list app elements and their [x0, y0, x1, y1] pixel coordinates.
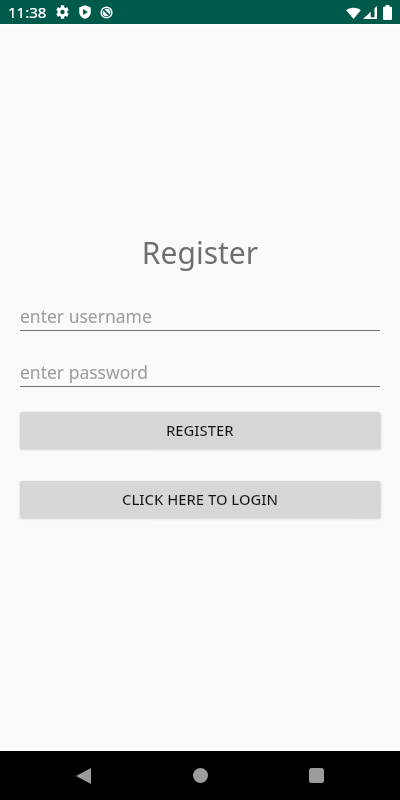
staticText: enter username	[20, 304, 152, 328]
staticText: 11:38	[8, 2, 47, 22]
button[interactable]: Home	[176, 751, 225, 800]
staticText: Register	[20, 232, 380, 273]
button[interactable]: Back	[59, 751, 108, 800]
staticText: CLICK HERE TO LOGIN	[122, 489, 279, 509]
staticText: REGISTER	[166, 420, 234, 440]
staticText: enter password	[20, 360, 148, 384]
button[interactable]: enter password	[20, 360, 380, 387]
button[interactable]: Recent apps	[292, 751, 341, 800]
button[interactable]: REGISTER	[20, 412, 380, 449]
button[interactable]: CLICK HERE TO LOGIN	[20, 481, 380, 518]
button[interactable]: enter username	[20, 304, 380, 331]
